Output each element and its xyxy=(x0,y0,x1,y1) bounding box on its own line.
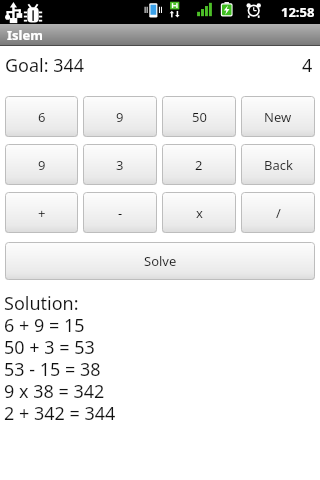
staticText: 6 + 9 = 15 xyxy=(4,313,85,335)
button[interactable]: 6 xyxy=(5,96,78,137)
staticText: 50 + 3 = 53 xyxy=(4,335,95,357)
staticText: 9 xyxy=(116,108,124,126)
button[interactable]: 3 xyxy=(83,144,157,185)
staticText: 3 xyxy=(116,156,124,174)
button[interactable]: Solve xyxy=(5,242,315,280)
staticText: 4 xyxy=(302,53,313,78)
staticText: x xyxy=(196,204,203,222)
button[interactable]: 9 xyxy=(5,144,78,185)
button[interactable]: Back xyxy=(241,144,315,185)
staticText: 9 xyxy=(38,156,46,174)
staticText: 12:58 xyxy=(281,3,315,21)
staticText: 50 xyxy=(192,108,207,126)
staticText: 2 + 342 = 344 xyxy=(4,401,116,423)
staticText: 6 xyxy=(38,108,46,126)
staticText: / xyxy=(276,204,281,222)
staticText: Islem xyxy=(7,26,43,44)
button[interactable]: / xyxy=(241,192,315,233)
staticText: Back xyxy=(264,156,293,174)
button[interactable]: x xyxy=(162,192,236,233)
staticText: Solution: xyxy=(4,291,79,313)
staticText: + xyxy=(38,204,46,222)
staticText: 53 - 15 = 38 xyxy=(4,357,101,379)
staticText: Goal: 344 xyxy=(5,53,85,78)
button[interactable]: 50 xyxy=(162,96,236,137)
button[interactable]: New xyxy=(241,96,315,137)
staticText: 9 x 38 = 342 xyxy=(4,379,105,401)
button[interactable]: + xyxy=(5,192,78,233)
button[interactable]: 2 xyxy=(162,144,236,185)
staticText: Solve xyxy=(144,252,177,270)
button[interactable]: - xyxy=(83,192,157,233)
staticText: 2 xyxy=(195,156,203,174)
staticText: New xyxy=(264,108,292,126)
staticText: - xyxy=(118,204,123,222)
button[interactable]: 9 xyxy=(83,96,157,137)
